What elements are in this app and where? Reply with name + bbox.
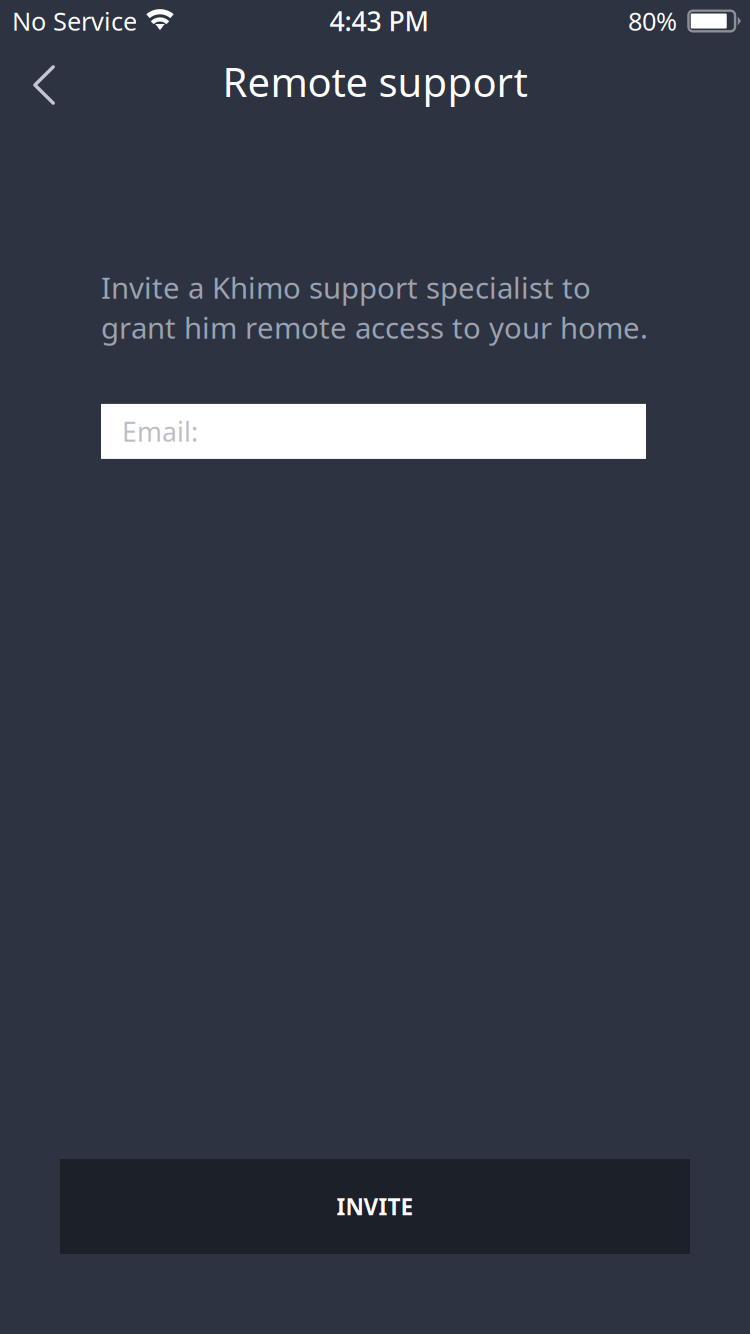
button[interactable]: Email: bbox=[101, 404, 646, 459]
staticText: Invite a Khimo support specialist to gra… bbox=[101, 268, 648, 347]
staticText: No Service bbox=[12, 4, 137, 38]
button[interactable]: INVITE bbox=[60, 1159, 690, 1254]
staticText: 80% bbox=[628, 4, 677, 38]
staticText: Email: bbox=[122, 414, 198, 449]
staticText: 4:43 PM bbox=[329, 3, 428, 39]
staticText: INVITE bbox=[336, 1191, 413, 1221]
button[interactable]: Back bbox=[6, 47, 82, 123]
staticText: Remote support bbox=[222, 55, 527, 108]
